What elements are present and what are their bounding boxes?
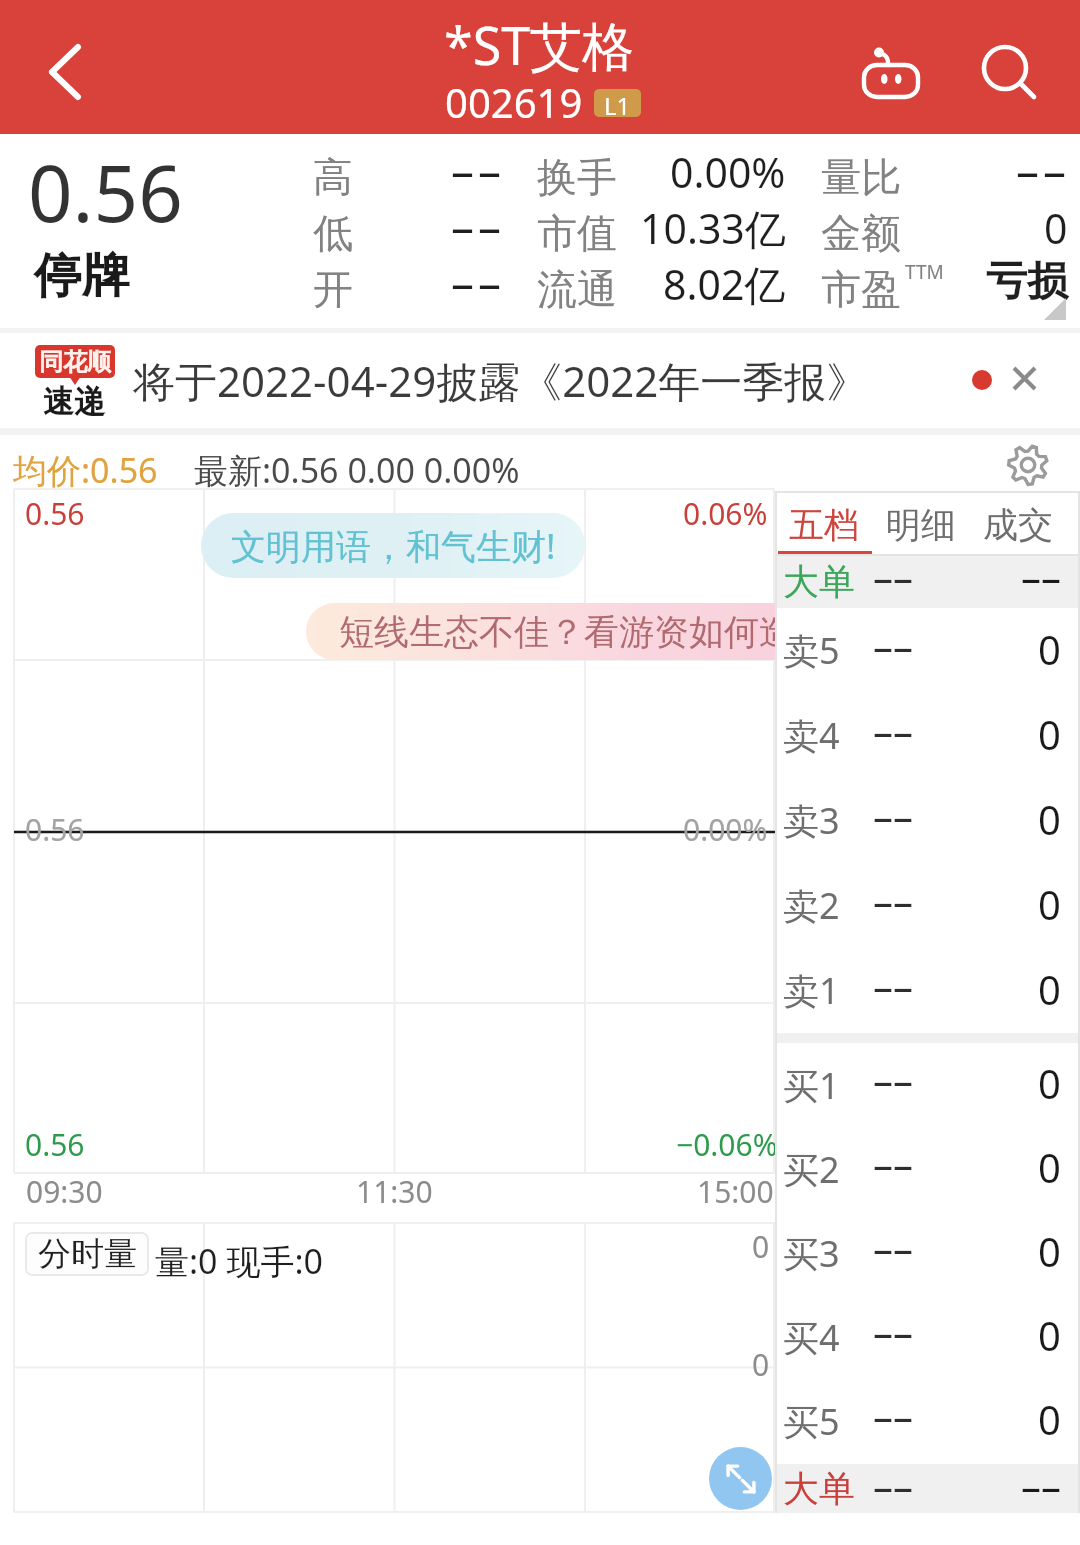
staticText: 买3 [783, 1229, 840, 1278]
staticText: 0.56 [28, 139, 183, 245]
staticText: TTM [905, 259, 944, 285]
staticText: 0.00% [670, 144, 786, 200]
button[interactable]: AI assistant [834, 16, 948, 130]
staticText: 买4 [783, 1313, 840, 1362]
staticText: 量比 [821, 152, 901, 202]
staticText: 分时量 [38, 1233, 137, 1275]
button[interactable]: 卖1 [775, 948, 1080, 1033]
staticText: –– [1021, 1458, 1061, 1507]
button[interactable]: 成交 [969, 491, 1066, 555]
staticText: 0 [1038, 877, 1061, 931]
staticText: 15:00 [697, 1171, 774, 1212]
staticText: 最新:0.56 0.00 0.00% [194, 447, 520, 493]
staticText: 0.00% [683, 809, 768, 850]
staticText: 0 [1038, 1056, 1061, 1110]
button[interactable]: 五档 [775, 491, 872, 555]
button[interactable]: 卖2 [775, 863, 1080, 948]
staticText: –– [1014, 138, 1068, 201]
staticText: –– [873, 1136, 913, 1190]
staticText: 0 [1038, 707, 1061, 761]
button[interactable]: 文明用语，和气生财! [201, 513, 585, 578]
button[interactable]: Close [1000, 354, 1050, 404]
button[interactable]: 买3 [775, 1211, 1080, 1295]
staticText: 卖2 [783, 881, 840, 930]
button[interactable]: 大单 [775, 1464, 1080, 1513]
staticText: 0 [752, 1344, 770, 1385]
staticText: *ST艾格 [444, 9, 635, 80]
button[interactable]: 短线生态不佳？看游资如何造 [306, 603, 806, 660]
staticText: 卖4 [783, 711, 840, 760]
staticText: 0 [1038, 1224, 1061, 1278]
button[interactable]: 卖4 [775, 693, 1080, 778]
staticText: 0.56 [25, 1124, 85, 1165]
button[interactable]: 卖3 [775, 778, 1080, 863]
staticText: –– [873, 703, 913, 757]
button[interactable]: 明细 [872, 491, 969, 555]
staticText: 0 [1044, 200, 1068, 256]
staticText: 卖3 [783, 796, 840, 845]
staticText: 0 [1038, 1140, 1061, 1194]
staticText: –– [873, 1220, 913, 1274]
staticText: −0.06% [676, 1124, 778, 1165]
staticText: 0.06% [683, 493, 768, 534]
staticText: 市盈 [821, 264, 901, 314]
staticText: 0 [1038, 1392, 1061, 1446]
staticText: –– [873, 549, 913, 602]
staticText: 均价:0.56 [13, 447, 158, 493]
staticText: 大单 [783, 559, 855, 604]
button[interactable]: 买5 [775, 1379, 1080, 1463]
button[interactable]: Search [954, 16, 1066, 130]
staticText: 0.56 [25, 809, 85, 850]
staticText: 低 [313, 208, 353, 258]
staticText: –– [873, 788, 913, 842]
staticText: 0.56 [25, 493, 85, 534]
staticText: 0 [1038, 622, 1061, 676]
staticText: 市值 [537, 208, 617, 258]
staticText: 买5 [783, 1397, 840, 1446]
staticText: 短线生态不佳？看游资如何造 [339, 610, 794, 654]
button[interactable]: 买4 [775, 1295, 1080, 1379]
staticText: 开 [313, 264, 353, 314]
button[interactable]: 卖5 [775, 608, 1080, 693]
staticText: 0 [1038, 962, 1061, 1016]
staticText: –– [449, 194, 503, 257]
staticText: 10.33亿 [640, 200, 786, 256]
staticText: 8.02亿 [663, 256, 786, 312]
button[interactable]: Back [0, 9, 130, 134]
staticText: 卖5 [783, 626, 840, 675]
staticText: 0 [1038, 792, 1061, 846]
staticText: 买2 [783, 1145, 840, 1194]
button[interactable]: Fullscreen [709, 1447, 772, 1510]
staticText: 高 [313, 152, 353, 202]
staticText: 0 [1038, 1308, 1061, 1362]
button[interactable]: 大单 [775, 555, 1080, 608]
staticText: –– [873, 873, 913, 927]
button[interactable]: 买1 [775, 1043, 1080, 1127]
staticText: –– [1021, 549, 1061, 602]
staticText: –– [873, 1388, 913, 1442]
staticText: 大单 [783, 1466, 855, 1511]
staticText: 亏损 [986, 256, 1068, 308]
staticText: 将于2022-04-29披露《2022年一季报》 [133, 352, 869, 409]
staticText: –– [449, 138, 503, 201]
staticText: –– [449, 250, 503, 313]
button[interactable]: Settings [1007, 444, 1049, 486]
staticText: 买1 [783, 1061, 840, 1110]
staticText: 卖1 [783, 966, 840, 1015]
staticText: –– [873, 958, 913, 1012]
staticText: 明细 [886, 503, 956, 547]
staticText: 0 [752, 1226, 770, 1267]
staticText: 成交 [983, 503, 1053, 547]
staticText: –– [873, 1458, 913, 1507]
staticText: 五档 [789, 503, 859, 547]
staticText: 速递 [43, 382, 105, 421]
staticText: 金额 [821, 208, 901, 258]
staticText: 11:30 [356, 1171, 433, 1212]
staticText: 换手 [537, 152, 617, 202]
staticText: L1 [604, 89, 631, 117]
staticText: 停牌 [34, 246, 130, 306]
staticText: –– [873, 1304, 913, 1358]
button[interactable]: 买2 [775, 1127, 1080, 1211]
staticText: –– [873, 1052, 913, 1106]
staticText: –– [873, 618, 913, 672]
